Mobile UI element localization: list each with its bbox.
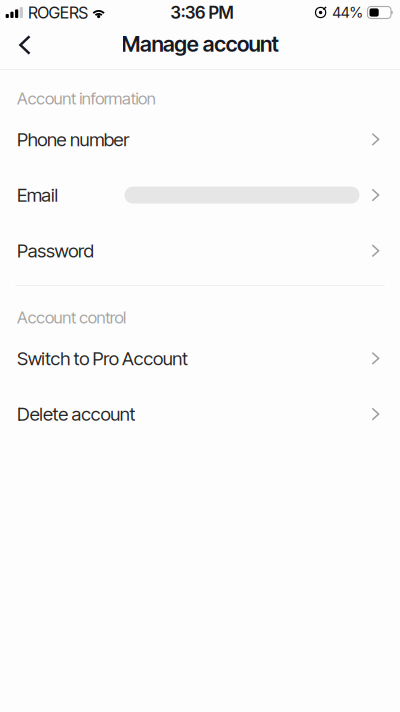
button[interactable]: Back: [5, 23, 45, 67]
button[interactable]: Delete account: [0, 386, 400, 442]
staticText: Password: [17, 239, 94, 262]
button[interactable]: Phone number: [0, 111, 400, 167]
staticText: Account information: [17, 88, 156, 108]
button[interactable]: Switch to Pro Account: [0, 330, 400, 386]
staticText: Phone number: [17, 128, 129, 151]
staticText: 3:36 PM: [170, 2, 234, 23]
staticText: ROGERS: [28, 3, 88, 22]
staticText: Manage account: [122, 31, 278, 57]
button[interactable]: Password: [0, 223, 400, 279]
button[interactable]: Email: [0, 167, 400, 223]
staticText: Email: [17, 184, 59, 206]
staticText: 44%: [332, 4, 363, 21]
staticText: Account control: [17, 307, 126, 327]
staticText: Delete account: [17, 403, 135, 425]
staticText: Switch to Pro Account: [17, 347, 188, 370]
